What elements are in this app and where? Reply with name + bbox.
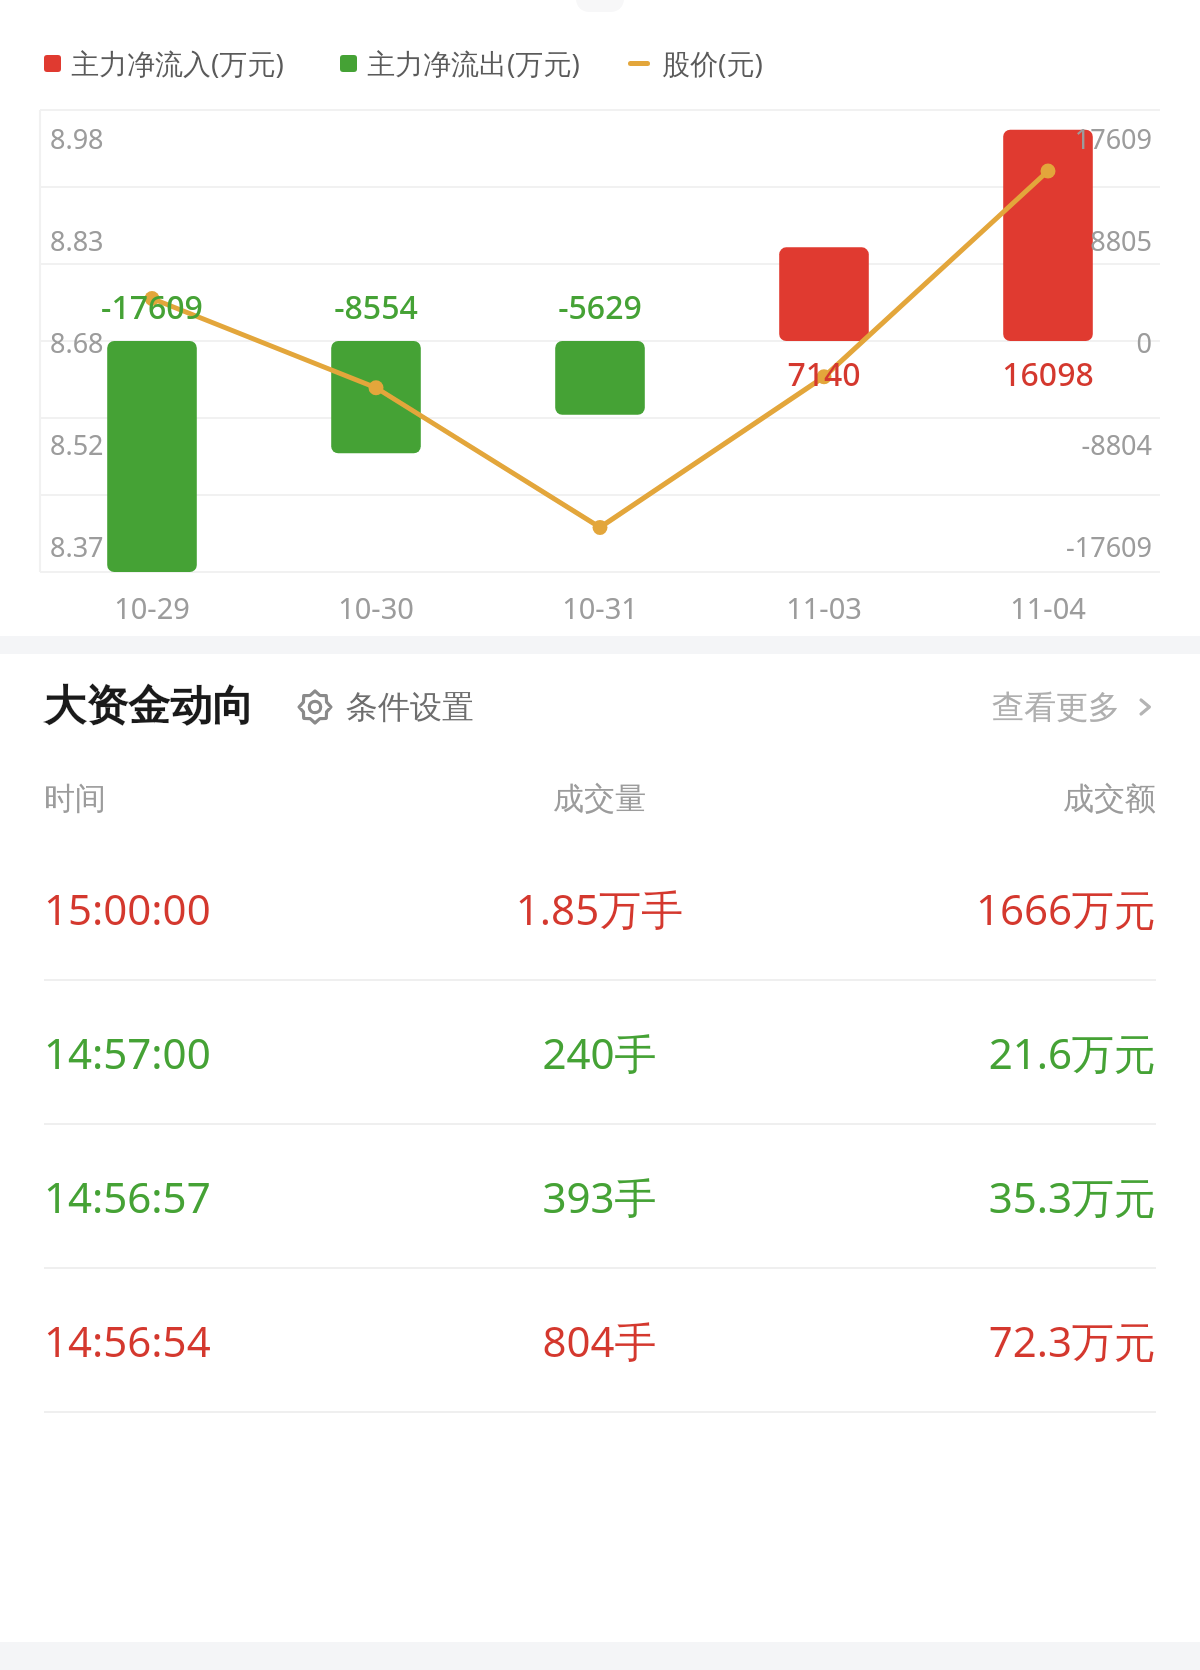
staticText: -8554 — [264, 285, 488, 329]
staticText: 查看更多 — [992, 687, 1120, 727]
staticText: 240手 — [414, 1024, 785, 1081]
staticText: 时间 — [44, 779, 414, 818]
staticText: 14:57:00 — [44, 1024, 414, 1081]
staticText: 16098 — [936, 352, 1160, 396]
staticText: 14:56:57 — [44, 1168, 414, 1225]
button[interactable]: 查看更多 — [992, 681, 1156, 733]
staticText: 成交额 — [785, 779, 1156, 818]
staticText: 条件设置 — [346, 687, 474, 727]
staticText: 主力净流入(万元) — [71, 44, 284, 82]
staticText: 21.6万元 — [785, 1024, 1156, 1081]
staticText: 8.37 — [50, 528, 104, 565]
staticText: 0 — [0, 324, 1152, 361]
other: 条件设置 — [296, 688, 334, 726]
staticText: 主力净流出(万元) — [367, 44, 580, 82]
staticText: 11-03 — [712, 588, 936, 627]
staticText: 股价(元) — [662, 44, 763, 82]
staticText: 8.83 — [50, 222, 104, 259]
staticText: -17609 — [40, 285, 264, 329]
button[interactable]: 14:56:57 — [0, 1125, 1200, 1267]
staticText: -5629 — [488, 285, 712, 329]
staticText: 10-29 — [40, 588, 264, 627]
staticText: 1666万元 — [785, 880, 1156, 937]
button[interactable]: 14:56:54 — [0, 1269, 1200, 1411]
staticText: 成交量 — [414, 779, 785, 818]
staticText: 7140 — [712, 352, 936, 396]
staticText: 大资金动向 — [44, 680, 254, 733]
staticText: 8.98 — [50, 120, 104, 157]
staticText: 393手 — [414, 1168, 785, 1225]
staticText: 10-31 — [488, 588, 712, 627]
staticText: 8.52 — [50, 426, 104, 463]
button[interactable]: 15:00:00 — [0, 837, 1200, 979]
staticText: 11-04 — [936, 588, 1160, 627]
staticText: 10-30 — [264, 588, 488, 627]
staticText: 1.85万手 — [414, 880, 785, 937]
button[interactable]: 14:57:00 — [0, 981, 1200, 1123]
staticText: 8805 — [0, 222, 1152, 259]
staticText: 15:00:00 — [44, 880, 414, 937]
staticText: 72.3万元 — [785, 1312, 1156, 1369]
staticText: -8804 — [0, 426, 1152, 463]
staticText: 14:56:54 — [44, 1312, 414, 1369]
staticText: 804手 — [414, 1312, 785, 1369]
staticText: 35.3万元 — [785, 1168, 1156, 1225]
button[interactable]: 条件设置 — [296, 681, 474, 733]
staticText: -17609 — [0, 528, 1152, 565]
staticText: 8.68 — [50, 324, 104, 361]
staticText: 17609 — [0, 120, 1152, 157]
